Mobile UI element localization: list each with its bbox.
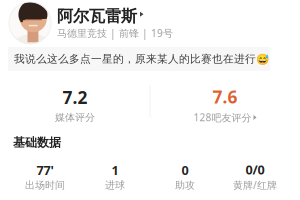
staticText: 128吧友评分 [193, 111, 251, 124]
staticText: 0 [181, 161, 188, 179]
staticText: 媒体评分 [55, 111, 95, 124]
button[interactable]: 阿尔瓦雷斯 [9, 1, 300, 45]
staticText: 我说么这么多点一星的，原来某人的比赛也在进行😅 [14, 52, 269, 66]
staticText: 0/0 [245, 161, 264, 178]
staticText: 出场时间 [25, 179, 65, 191]
staticText: 马德里竞技 | 前锋 | 19号 [57, 26, 173, 40]
staticText: 进球 [105, 179, 125, 191]
button[interactable]: 7.2 [0, 85, 150, 124]
staticText: 77' [36, 161, 53, 179]
button[interactable]: 7.6 [150, 85, 300, 124]
staticText: 助攻 [175, 179, 195, 191]
staticText: 基础数据 [13, 135, 61, 150]
staticText: 黄牌/红牌 [233, 178, 277, 192]
staticText: 7.6 [212, 85, 237, 109]
staticText: 阿尔瓦雷斯 [57, 6, 137, 26]
staticText: 1 [111, 161, 118, 179]
staticText: 7.2 [62, 85, 87, 109]
